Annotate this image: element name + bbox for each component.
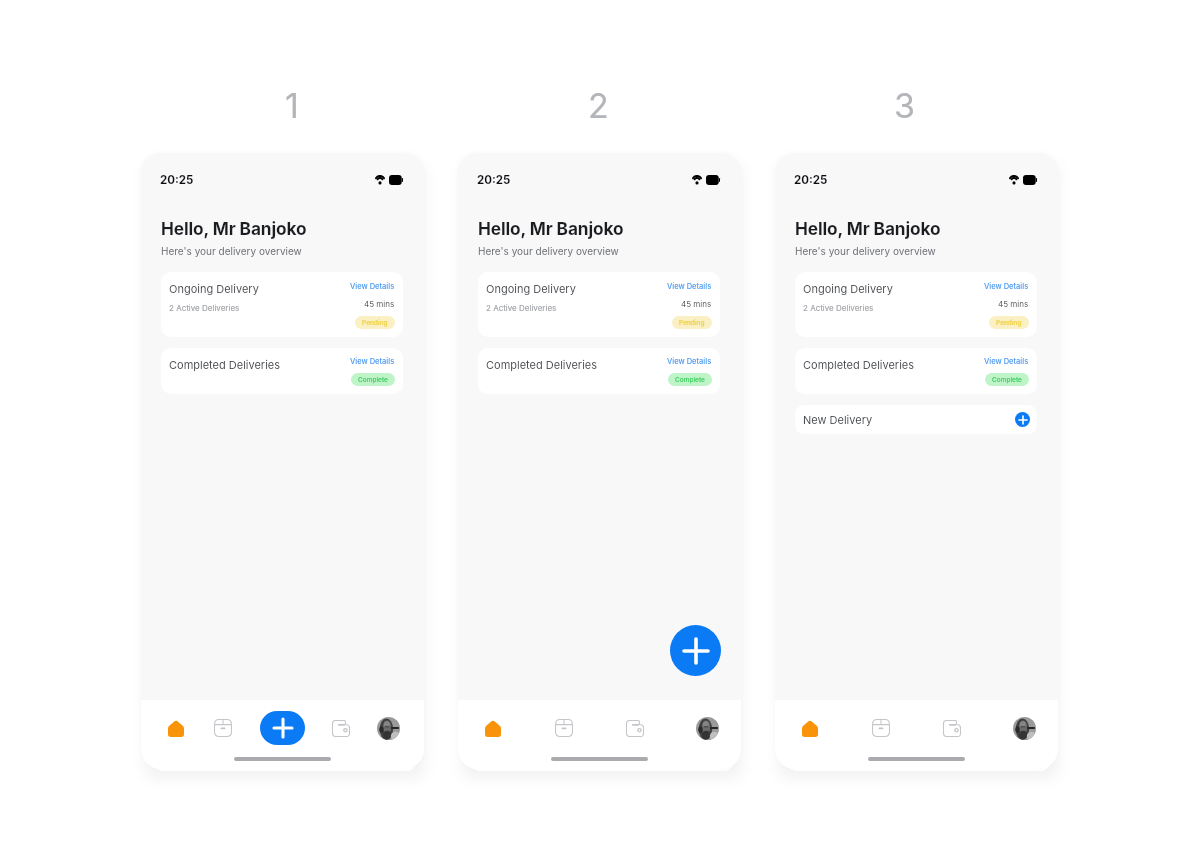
button[interactable]: Ongoing Delivery — [161, 272, 403, 337]
staticText: Complete — [992, 376, 1022, 384]
staticText: Pending — [996, 319, 1022, 327]
staticText: Ongoing Delivery — [803, 282, 893, 295]
button[interactable]: New Delivery — [795, 405, 1037, 434]
staticText: Hello, Mr Banjoko — [478, 218, 624, 239]
button[interactable]: New delivery — [670, 625, 721, 676]
staticText: 3 — [894, 85, 916, 126]
staticText: 2 — [588, 85, 609, 126]
button[interactable]: Wallet — [613, 706, 657, 750]
button[interactable]: Deliveries — [201, 706, 245, 750]
staticText: 20:25 — [160, 173, 194, 187]
staticText: Complete — [675, 376, 705, 384]
staticText: Here's your delivery overview — [478, 245, 619, 257]
button[interactable]: New delivery — [260, 711, 305, 745]
staticText: New Delivery — [803, 413, 873, 426]
staticText: 45 mins — [998, 299, 1029, 309]
staticText: View Details — [667, 357, 712, 366]
button[interactable]: Home — [154, 706, 198, 750]
button[interactable]: Profile — [366, 706, 410, 750]
staticText: Pending — [679, 319, 705, 327]
button[interactable]: Ongoing Delivery — [795, 272, 1037, 337]
staticText: View Details — [350, 282, 395, 291]
button[interactable]: Home — [471, 706, 515, 750]
button[interactable]: Completed Deliveries — [161, 348, 403, 394]
staticText: 2 Active Deliveries — [486, 303, 557, 313]
staticText: View Details — [984, 357, 1029, 366]
staticText: Complete — [358, 376, 388, 384]
staticText: 45 mins — [681, 299, 712, 309]
staticText: Here's your delivery overview — [795, 245, 936, 257]
staticText: 1 — [285, 85, 299, 126]
staticText: Hello, Mr Banjoko — [161, 218, 307, 239]
staticText: 45 mins — [364, 299, 395, 309]
button[interactable]: Profile — [1002, 706, 1046, 750]
staticText: 20:25 — [794, 173, 828, 187]
staticText: View Details — [667, 282, 712, 291]
staticText: Completed Deliveries — [169, 358, 281, 371]
button[interactable]: Ongoing Delivery — [478, 272, 720, 337]
staticText: View Details — [984, 282, 1029, 291]
button[interactable]: Home — [788, 706, 832, 750]
staticText: 20:25 — [477, 173, 511, 187]
staticText: View Details — [350, 357, 395, 366]
staticText: 2 Active Deliveries — [169, 303, 240, 313]
button[interactable]: Deliveries — [859, 706, 903, 750]
staticText: Hello, Mr Banjoko — [795, 218, 941, 239]
staticText: Ongoing Delivery — [486, 282, 576, 295]
staticText: Completed Deliveries — [803, 358, 915, 371]
staticText: Here's your delivery overview — [161, 245, 302, 257]
button[interactable]: Completed Deliveries — [478, 348, 720, 394]
button[interactable]: Wallet — [319, 706, 363, 750]
button[interactable]: Completed Deliveries — [795, 348, 1037, 394]
staticText: Completed Deliveries — [486, 358, 598, 371]
staticText: Pending — [362, 319, 388, 327]
button[interactable]: Profile — [685, 706, 729, 750]
staticText: Ongoing Delivery — [169, 282, 259, 295]
button[interactable]: Deliveries — [542, 706, 586, 750]
staticText: 2 Active Deliveries — [803, 303, 874, 313]
button[interactable]: Wallet — [930, 706, 974, 750]
